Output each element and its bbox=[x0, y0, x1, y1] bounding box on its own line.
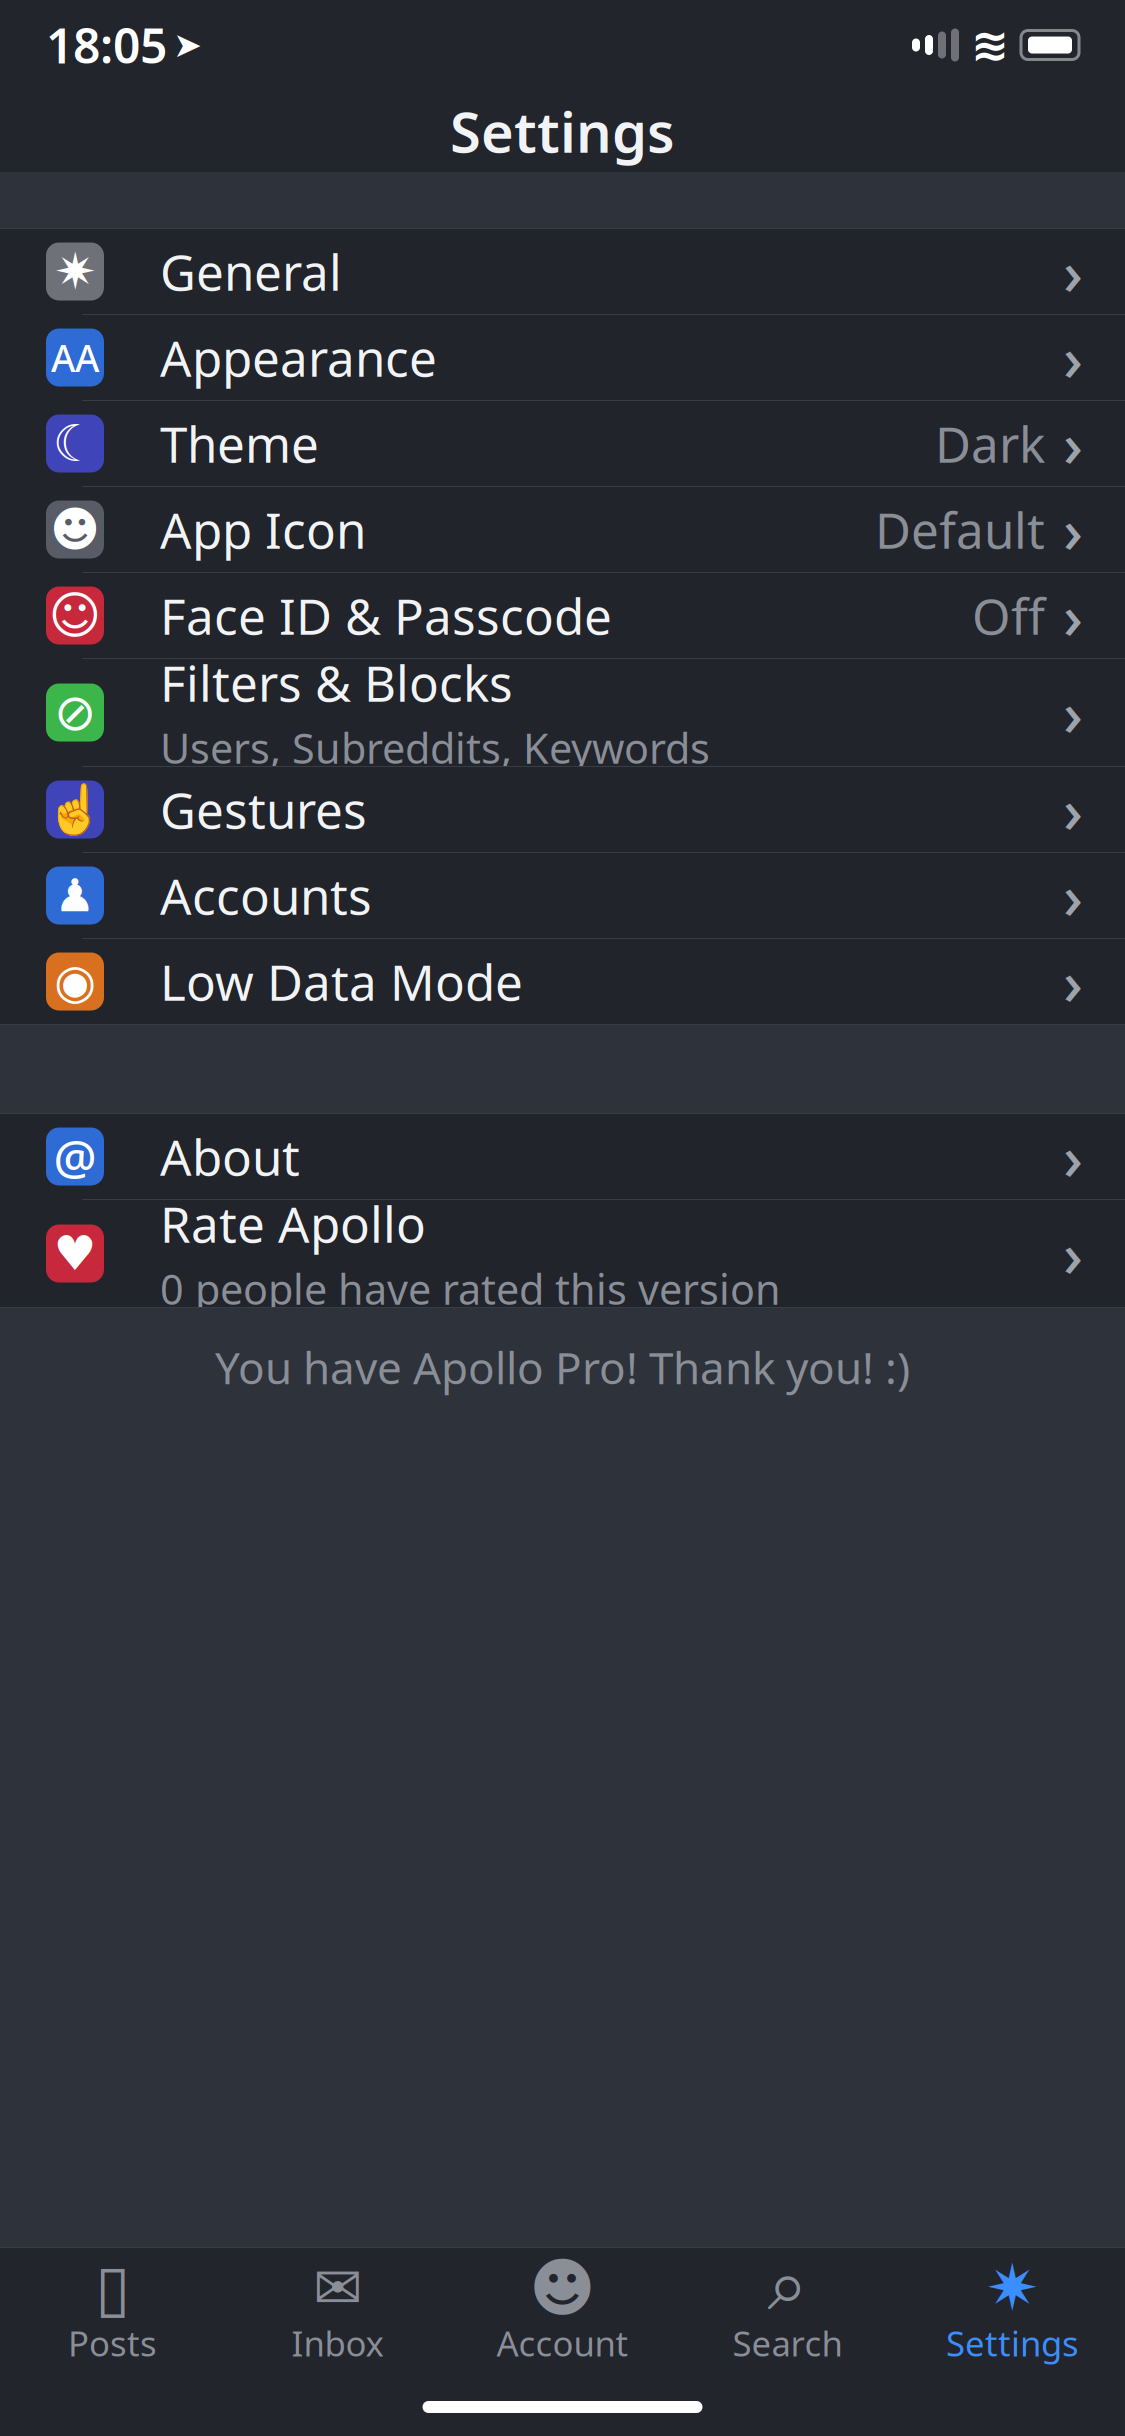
staticText: ✷ bbox=[54, 243, 96, 300]
button[interactable]: ✉ bbox=[225, 2248, 450, 2378]
staticText: Low Data Mode bbox=[160, 949, 523, 1014]
staticText: ⊘ bbox=[54, 684, 96, 741]
button[interactable]: ♥ bbox=[0, 1200, 1125, 1307]
button[interactable]: ⌕ bbox=[675, 2248, 900, 2378]
staticText: ✷ bbox=[985, 2252, 1039, 2324]
staticText: Appearance bbox=[160, 325, 437, 390]
staticText: ▯ bbox=[95, 2252, 130, 2324]
staticText: › bbox=[1063, 403, 1083, 484]
staticText: Filters & Blocks bbox=[160, 650, 513, 715]
staticText: › bbox=[1063, 1116, 1083, 1197]
staticText: ☻ bbox=[50, 502, 100, 557]
staticText: Accounts bbox=[160, 863, 372, 928]
button[interactable]: ☻ bbox=[450, 2248, 675, 2378]
staticText: ☻ bbox=[529, 2252, 596, 2324]
staticText: ◉ bbox=[54, 954, 96, 1009]
staticText: General bbox=[160, 239, 342, 304]
staticText: Inbox bbox=[291, 2320, 383, 2366]
button[interactable]: @ bbox=[0, 1114, 1125, 1199]
staticText: 18:05 bbox=[46, 13, 167, 77]
staticText: 0 people have rated this version bbox=[160, 1261, 781, 1316]
staticText: ☾ bbox=[52, 415, 97, 472]
staticText: ✉ bbox=[313, 2255, 362, 2321]
staticText: @ bbox=[53, 1125, 96, 1188]
staticText: › bbox=[1063, 317, 1083, 398]
staticText: › bbox=[1063, 1213, 1083, 1294]
staticText: AA bbox=[51, 333, 99, 382]
staticText: › bbox=[1063, 575, 1083, 656]
staticText: ♥ bbox=[53, 1226, 96, 1281]
staticText: Posts bbox=[68, 2320, 157, 2366]
button[interactable]: ♟ bbox=[0, 853, 1125, 938]
staticText: › bbox=[1063, 769, 1083, 850]
staticText: ≋ bbox=[971, 19, 1009, 71]
staticText: App Icon bbox=[160, 497, 366, 562]
button[interactable]: ☾ bbox=[0, 401, 1125, 486]
staticText: Search bbox=[732, 2320, 842, 2366]
staticText: ♟ bbox=[54, 870, 95, 921]
staticText: Default bbox=[875, 497, 1045, 562]
button[interactable]: ✷ bbox=[900, 2248, 1125, 2378]
button[interactable]: ☝ bbox=[0, 767, 1125, 852]
staticText: Gestures bbox=[160, 777, 367, 842]
staticText: Settings bbox=[946, 2320, 1079, 2366]
staticText: › bbox=[1063, 672, 1083, 753]
staticText: ➤ bbox=[173, 25, 202, 65]
button[interactable]: ⊘ bbox=[0, 659, 1125, 766]
button[interactable]: ☺ bbox=[0, 573, 1125, 658]
staticText: › bbox=[1063, 231, 1083, 312]
staticText: You have Apollo Pro! Thank you! :) bbox=[215, 1338, 910, 1396]
staticText: › bbox=[1063, 489, 1083, 570]
button[interactable]: ▯ bbox=[0, 2248, 225, 2378]
staticText: Settings bbox=[450, 94, 675, 168]
staticText: › bbox=[1063, 855, 1083, 936]
staticText: Rate Apollo bbox=[160, 1191, 426, 1256]
staticText: Account bbox=[496, 2320, 628, 2366]
staticText: ☺ bbox=[48, 587, 101, 644]
staticText: Dark bbox=[935, 411, 1045, 476]
staticText: ☝ bbox=[45, 782, 105, 837]
button[interactable]: AA bbox=[0, 315, 1125, 400]
staticText: Theme bbox=[160, 411, 319, 476]
staticText: Users, Subreddits, Keywords bbox=[160, 720, 710, 775]
staticText: ⌕ bbox=[767, 2253, 807, 2323]
button[interactable]: ◉ bbox=[0, 939, 1125, 1024]
button[interactable]: ☻ bbox=[0, 487, 1125, 572]
staticText: Face ID & Passcode bbox=[160, 583, 612, 648]
staticText: About bbox=[160, 1124, 300, 1189]
staticText: Off bbox=[972, 583, 1045, 648]
button[interactable]: ✷ bbox=[0, 229, 1125, 314]
staticText: › bbox=[1063, 941, 1083, 1022]
